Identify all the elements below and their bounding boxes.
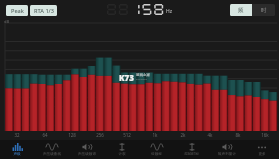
staticText: 倍频程 <box>151 152 162 157</box>
staticText: 256 <box>93 132 107 138</box>
staticText: 频 <box>238 7 244 14</box>
button[interactable]: 混响时间 <box>174 140 209 159</box>
staticText: 更多 <box>258 152 266 157</box>
staticText: 混响时间 <box>184 152 199 157</box>
button[interactable]: Peak <box>6 5 28 16</box>
button[interactable]: 噪声剂量计 <box>209 140 244 159</box>
staticText: 64 <box>38 132 52 138</box>
button[interactable]: 倍频程 <box>139 140 174 159</box>
button[interactable]: 时 <box>252 4 275 16</box>
staticText: 计权 <box>118 152 126 157</box>
staticText: 512 <box>120 132 134 138</box>
staticText: 32 <box>10 132 24 138</box>
staticText: K73 <box>119 72 134 83</box>
button[interactable]: 声压级频谱 <box>69 140 104 159</box>
staticText: 声级 <box>13 152 21 157</box>
button[interactable]: 更多 <box>244 140 279 159</box>
staticText: 声压级频谱 <box>78 152 96 157</box>
staticText: 8k <box>231 132 245 138</box>
staticText: 时 <box>261 7 267 14</box>
staticText: 噪声剂量计 <box>218 152 236 157</box>
staticText: 1k <box>148 132 162 138</box>
staticText: RTA 1/3 <box>34 7 54 15</box>
button[interactable]: RTA 1/3 <box>30 5 57 16</box>
staticText: Hz <box>166 8 173 15</box>
button[interactable]: 频 <box>230 4 252 16</box>
staticText: 128 <box>65 132 79 138</box>
staticText: K73.COM <box>136 77 147 80</box>
button[interactable]: 声压级曲线 <box>34 140 69 159</box>
staticText: 游戏之家 <box>136 73 150 77</box>
staticText: dB <box>4 19 10 24</box>
staticText: 2k <box>176 132 190 138</box>
staticText: Peak <box>11 7 24 15</box>
staticText: 声压级曲线 <box>43 152 61 157</box>
button[interactable]: 计权 <box>104 140 139 159</box>
staticText: 16k <box>258 132 272 138</box>
staticText: 4k <box>203 132 217 138</box>
button[interactable]: 声级 <box>0 140 34 159</box>
